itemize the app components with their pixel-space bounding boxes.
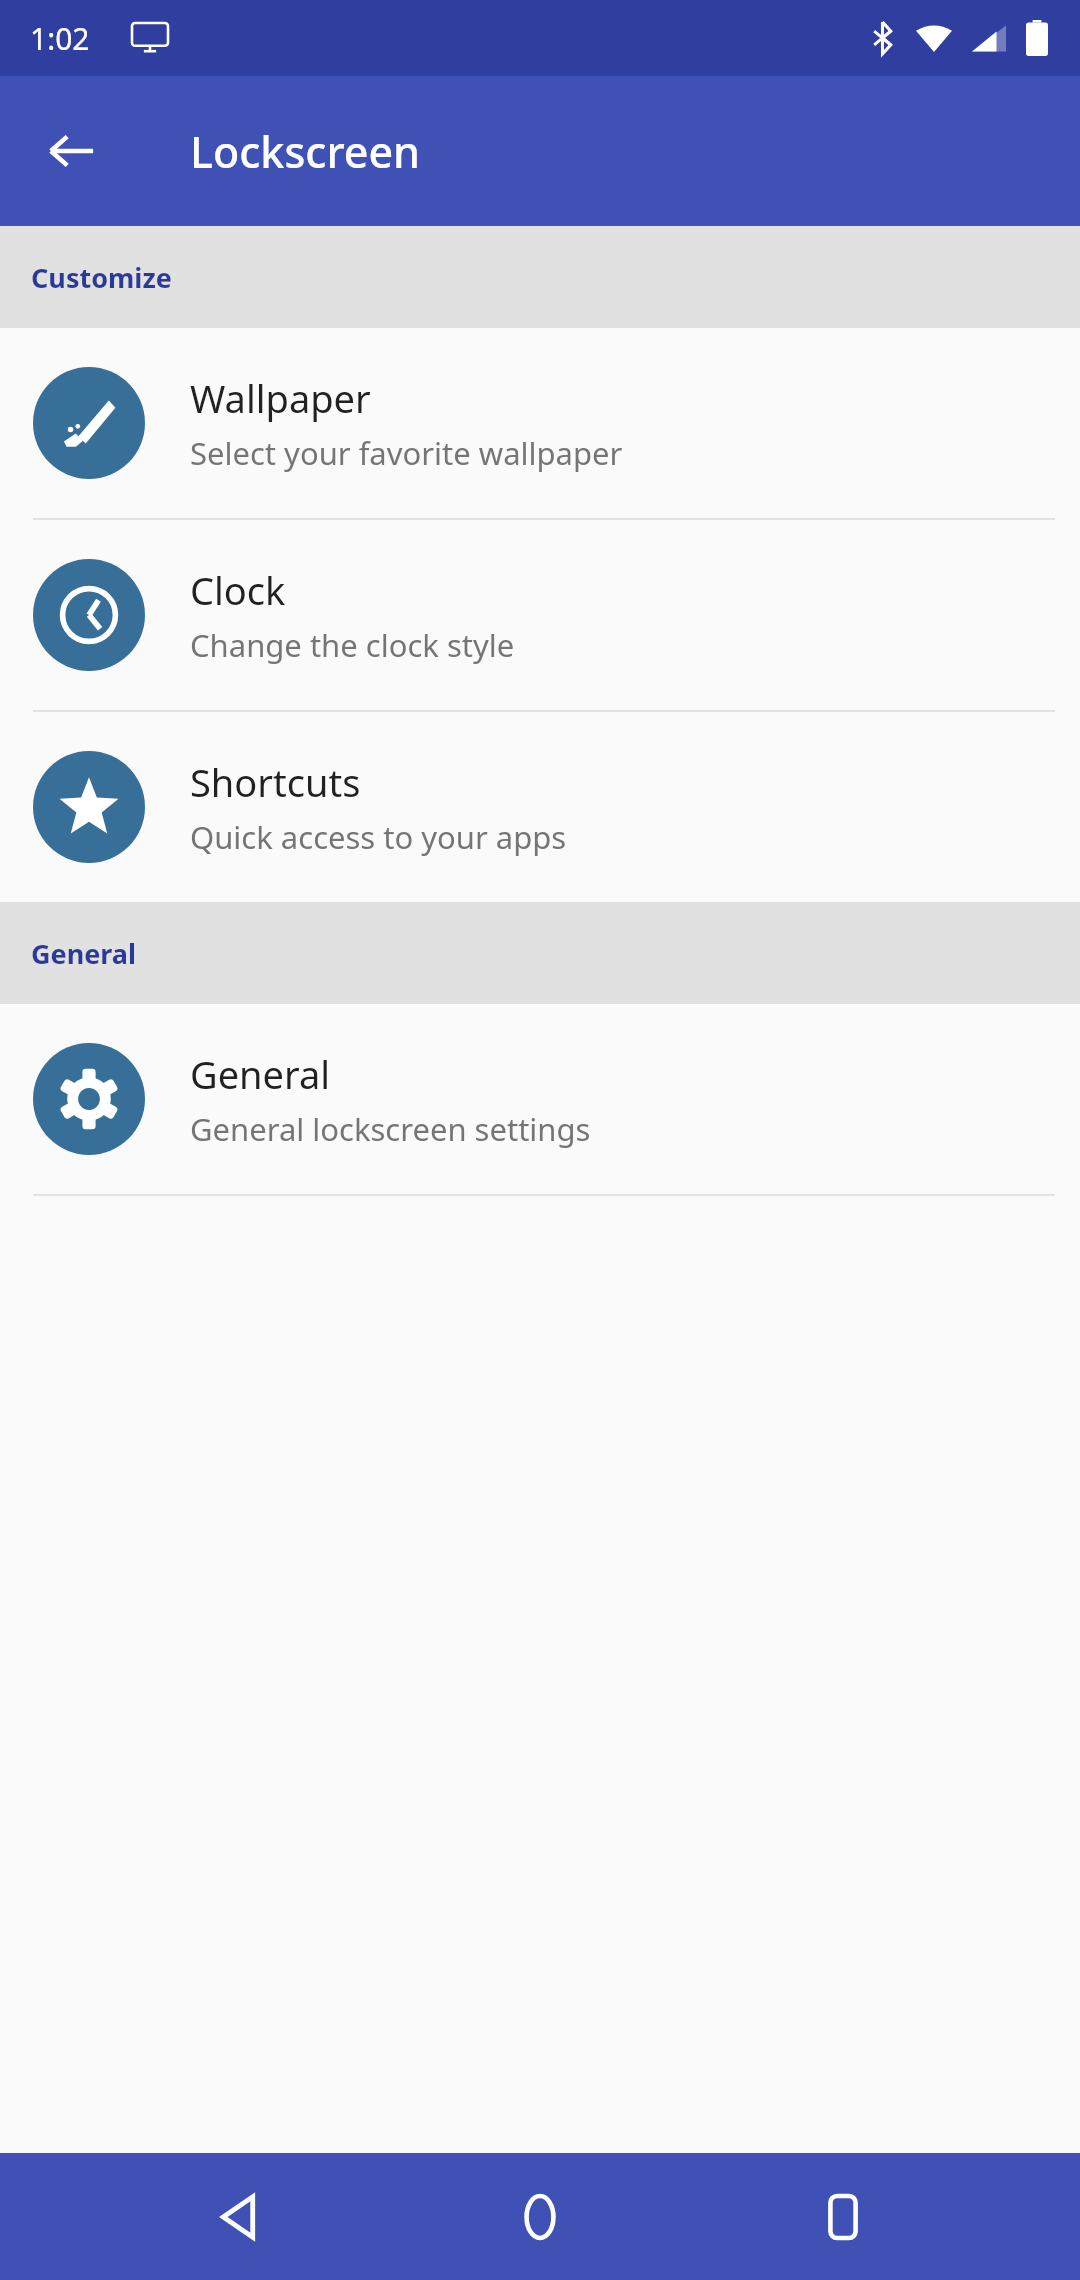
staticText: 1:02: [30, 18, 90, 59]
staticText: Quick access to your apps: [190, 816, 567, 858]
button[interactable]: Wallpaper: [0, 328, 1080, 518]
staticText: General: [31, 935, 137, 972]
staticText: Shortcuts: [190, 756, 361, 808]
staticText: General lockscreen settings: [190, 1108, 591, 1150]
staticText: Change the clock style: [190, 624, 515, 666]
button[interactable]: Clock: [0, 520, 1080, 710]
button[interactable]: Home: [475, 2153, 605, 2280]
button[interactable]: General: [0, 1004, 1080, 1194]
button[interactable]: Back: [173, 2153, 303, 2280]
staticText: Customize: [31, 259, 172, 296]
button[interactable]: Shortcuts: [0, 712, 1080, 902]
staticText: Lockscreen: [190, 122, 421, 181]
button[interactable]: Back: [24, 103, 120, 199]
staticText: Select your favorite wallpaper: [190, 432, 623, 474]
staticText: Wallpaper: [190, 372, 371, 424]
button[interactable]: Recent apps: [778, 2153, 908, 2280]
staticText: General: [190, 1048, 331, 1100]
staticText: Clock: [190, 564, 286, 616]
